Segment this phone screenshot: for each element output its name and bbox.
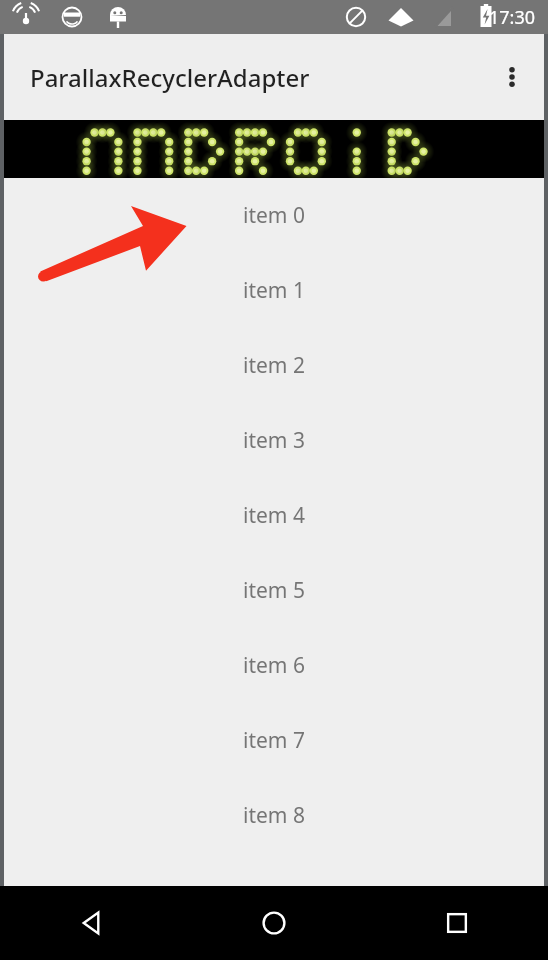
staticText: item 0 [243, 201, 305, 230]
staticText: item 5 [243, 576, 305, 605]
button[interactable]: item 6 [0, 628, 548, 703]
button[interactable]: Recent apps [365, 886, 548, 960]
button[interactable]: More options [490, 55, 534, 99]
staticText: item 8 [243, 801, 305, 830]
button[interactable]: Back [0, 886, 182, 960]
button[interactable]: item 4 [0, 478, 548, 553]
other: Arrow annotation [38, 202, 188, 282]
staticText: item 4 [243, 501, 305, 530]
staticText: item 6 [243, 651, 305, 680]
staticText: item 7 [243, 726, 305, 755]
button[interactable]: item 0 [0, 178, 548, 253]
staticText: 17:30 [489, 5, 536, 30]
staticText: ParallaxRecyclerAdapter [30, 61, 310, 94]
staticText: item 2 [243, 351, 305, 380]
button[interactable]: item 5 [0, 553, 548, 628]
staticText: item 1 [243, 276, 305, 305]
button[interactable]: item 8 [0, 778, 548, 853]
button[interactable]: item 2 [0, 328, 548, 403]
button[interactable]: item 3 [0, 403, 548, 478]
staticText: item 3 [243, 426, 305, 455]
button[interactable]: Home [182, 886, 365, 960]
button[interactable]: item 1 [0, 253, 548, 328]
button[interactable]: item 7 [0, 703, 548, 778]
